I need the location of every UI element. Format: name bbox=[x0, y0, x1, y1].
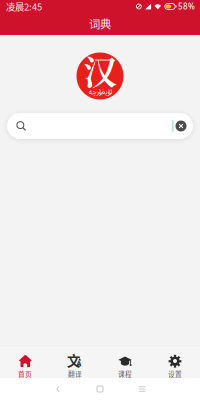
button[interactable]: 文 bbox=[50, 345, 100, 378]
staticText: 课程 bbox=[118, 369, 132, 379]
staticText: 设置 bbox=[168, 369, 182, 379]
staticText: 首页 bbox=[18, 369, 32, 379]
button[interactable]: Search bbox=[7, 113, 193, 139]
button[interactable]: Home bbox=[79, 378, 121, 400]
button[interactable]: 首页 bbox=[0, 345, 50, 378]
staticText: ئۇيغۇرچە bbox=[88, 84, 112, 100]
button[interactable]: 设置 bbox=[150, 345, 200, 378]
button[interactable]: Recents bbox=[121, 378, 163, 400]
staticText: 文 bbox=[67, 351, 80, 370]
staticText: 凌晨2:45 bbox=[6, 0, 42, 13]
staticText: 汉 bbox=[83, 46, 116, 94]
staticText: 翻译 bbox=[68, 369, 82, 379]
staticText: A bbox=[76, 359, 81, 368]
staticText: 58% bbox=[178, 1, 195, 12]
button[interactable]: 课程 bbox=[100, 345, 150, 378]
button[interactable]: Back bbox=[37, 378, 79, 400]
staticText: 词典 bbox=[89, 15, 111, 32]
